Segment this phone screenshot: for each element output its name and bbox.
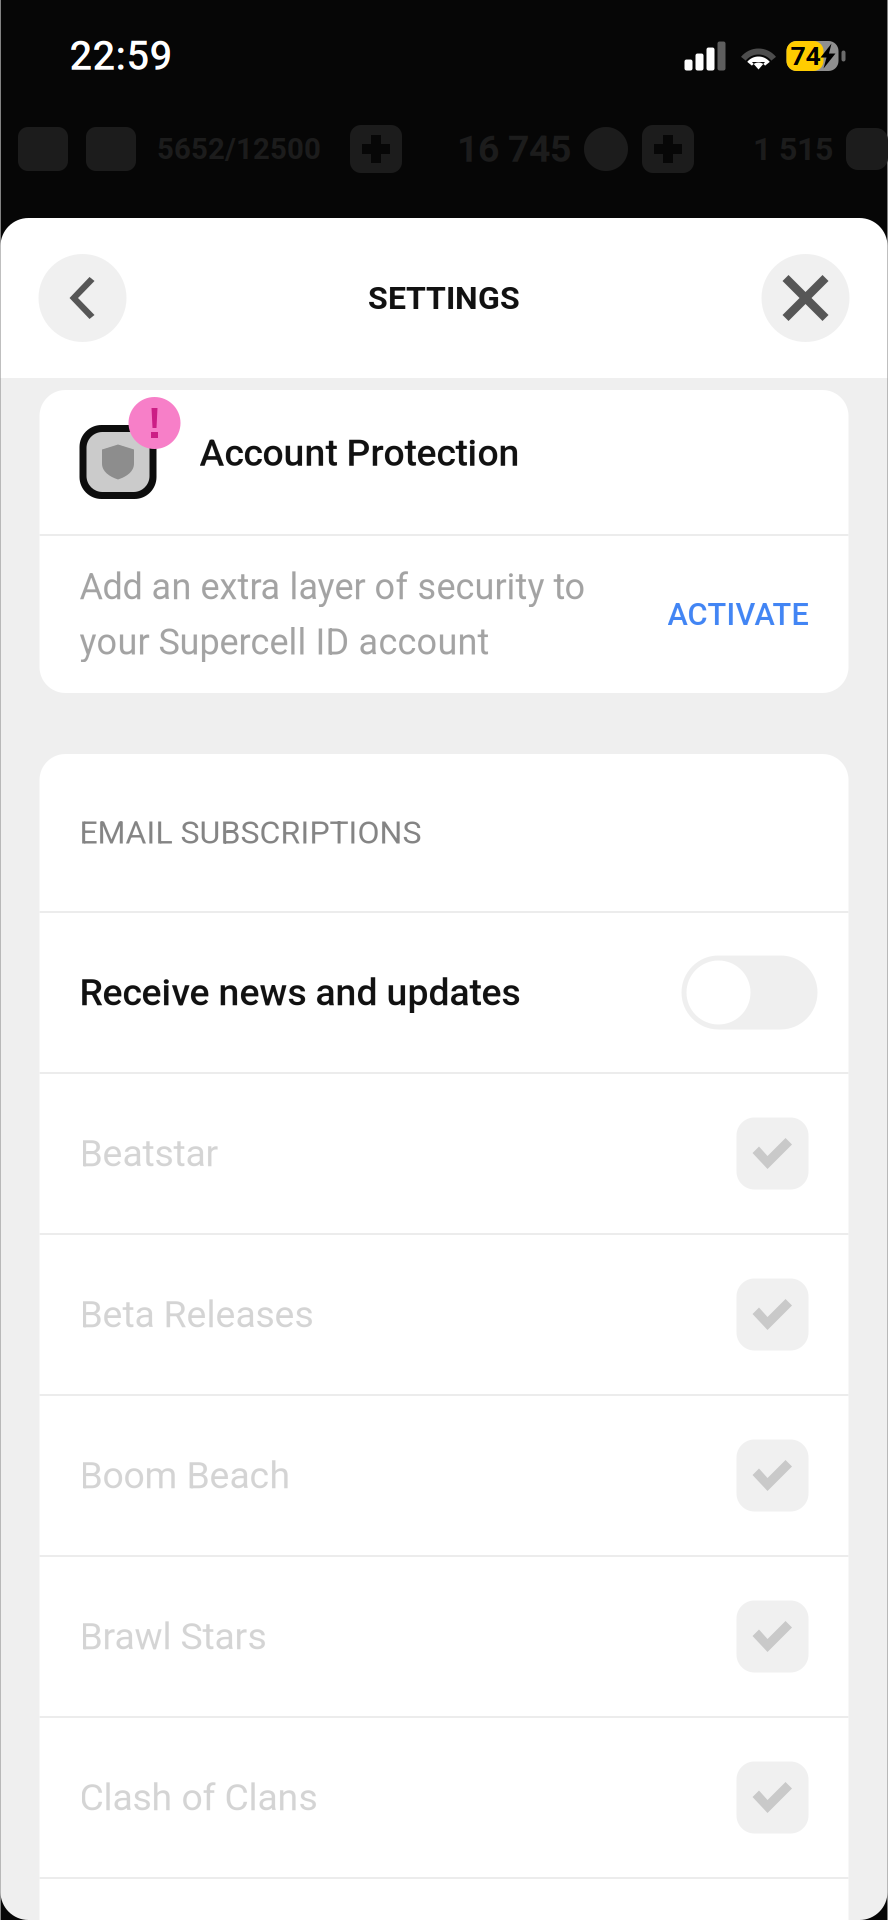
staticText: SETTINGS	[368, 279, 520, 317]
staticText: 1 515	[753, 130, 833, 168]
staticText: Beatstar	[79, 1132, 218, 1175]
staticText: 74	[790, 40, 820, 72]
button[interactable]: Brawl Stars	[39, 1557, 848, 1716]
button[interactable]: Clash of Clans	[39, 1718, 848, 1877]
button[interactable]: Close	[761, 254, 849, 342]
staticText: Beta Releases	[79, 1293, 313, 1336]
staticText: Receive news and updates	[79, 971, 520, 1014]
staticText: Boom Beach	[79, 1454, 290, 1497]
button[interactable]: ACTIVATE	[667, 596, 808, 632]
staticText: Clash of Clans	[79, 1776, 317, 1819]
button[interactable]: Boom Beach	[39, 1396, 848, 1555]
staticText: EMAIL SUBSCRIPTIONS	[79, 814, 421, 851]
staticText: ACTIVATE	[667, 596, 808, 632]
button[interactable]: Back	[38, 254, 126, 342]
staticText: your Supercell ID account	[79, 621, 489, 663]
button[interactable]: Beatstar	[39, 1074, 848, 1233]
staticText: 16 745	[457, 127, 571, 171]
staticText: Add an extra layer of security to	[79, 566, 585, 608]
button[interactable]: Receive news and updates	[39, 913, 848, 1072]
staticText: Brawl Stars	[79, 1615, 266, 1658]
button[interactable]: Beta Releases	[39, 1235, 848, 1394]
staticText: 5652/12500	[157, 132, 321, 166]
staticText: Account Protection	[199, 431, 519, 475]
staticText: 22:59	[69, 33, 172, 79]
